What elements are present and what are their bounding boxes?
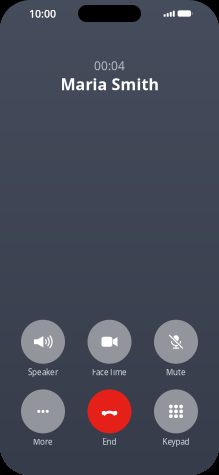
staticText: Speaker [28, 367, 58, 377]
staticText: End [102, 436, 116, 447]
staticText: 00:04 [94, 57, 125, 73]
button[interactable]: Mute [146, 320, 206, 377]
button[interactable]: Keypad [146, 389, 206, 447]
staticText: Keypad [162, 436, 189, 447]
staticText: FaceTime [92, 367, 127, 377]
staticText: Maria Smith [60, 73, 158, 95]
staticText: 10:00 [29, 6, 56, 21]
staticText: Mute [166, 367, 186, 377]
staticText: More [33, 436, 53, 447]
button[interactable]: End [79, 389, 139, 447]
button[interactable]: More [13, 389, 73, 447]
button[interactable]: FaceTime [79, 320, 139, 377]
button[interactable]: Speaker [13, 320, 73, 377]
